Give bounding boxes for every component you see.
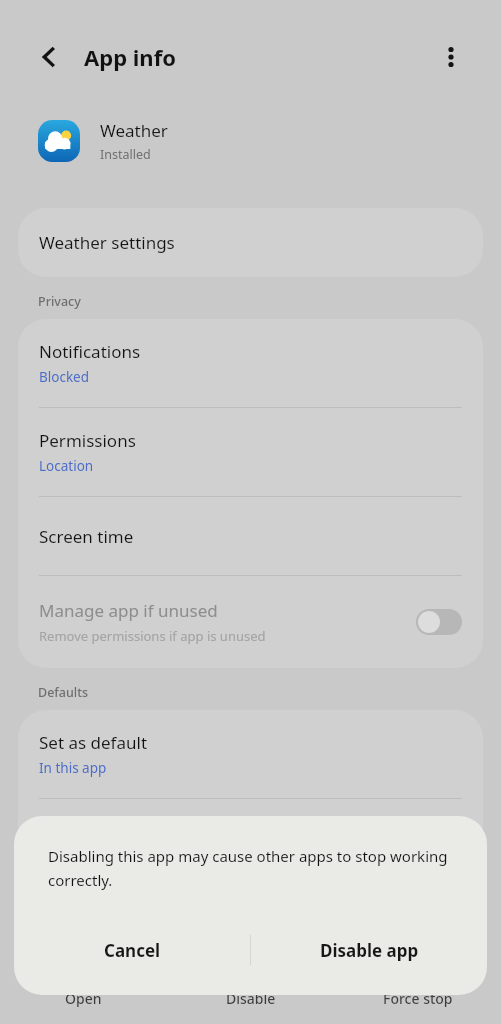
button[interactable]: Disable	[167, 972, 334, 1024]
staticText: Open	[65, 989, 102, 1008]
staticText: Defaults	[38, 684, 89, 701]
staticText: Manage app if unused	[39, 599, 218, 622]
button[interactable]: Disable app	[251, 917, 487, 983]
staticText: Force stop	[383, 989, 453, 1008]
button[interactable]: Cancel	[14, 917, 250, 983]
staticText: Weather	[100, 119, 168, 142]
staticText: In this app	[39, 759, 107, 777]
staticText: Installed	[100, 146, 151, 163]
staticText: Set as default	[39, 731, 148, 754]
button[interactable]: Open	[0, 972, 167, 1024]
staticText: App info	[84, 42, 176, 72]
staticText: Permissions	[39, 429, 136, 452]
button[interactable]: Screen time	[18, 497, 483, 575]
staticText: Disabling this app may cause other apps …	[48, 846, 457, 890]
button[interactable]: Weather settings	[18, 208, 483, 277]
other: Manage app if unused	[416, 609, 462, 635]
staticText: Notifications	[39, 340, 141, 363]
staticText: Remove permissions if app is unused	[39, 627, 266, 645]
button[interactable]: Back	[26, 33, 74, 81]
staticText: Disable app	[320, 939, 419, 962]
staticText: Privacy	[38, 293, 81, 310]
button[interactable]: Set as default	[18, 710, 483, 798]
staticText: Weather settings	[39, 231, 175, 254]
button[interactable]: Manage app if unused	[18, 576, 483, 668]
staticText: Blocked	[39, 368, 90, 386]
button[interactable]: Notifications	[18, 319, 483, 407]
button[interactable]: Force stop	[334, 972, 501, 1024]
button[interactable]: Battery	[18, 799, 483, 877]
button[interactable]: More options	[427, 33, 475, 81]
staticText: Screen time	[39, 525, 134, 548]
staticText: Cancel	[104, 939, 161, 962]
staticText: Disable	[226, 989, 276, 1008]
button[interactable]: Permissions	[18, 408, 483, 496]
staticText: Location	[39, 457, 94, 475]
